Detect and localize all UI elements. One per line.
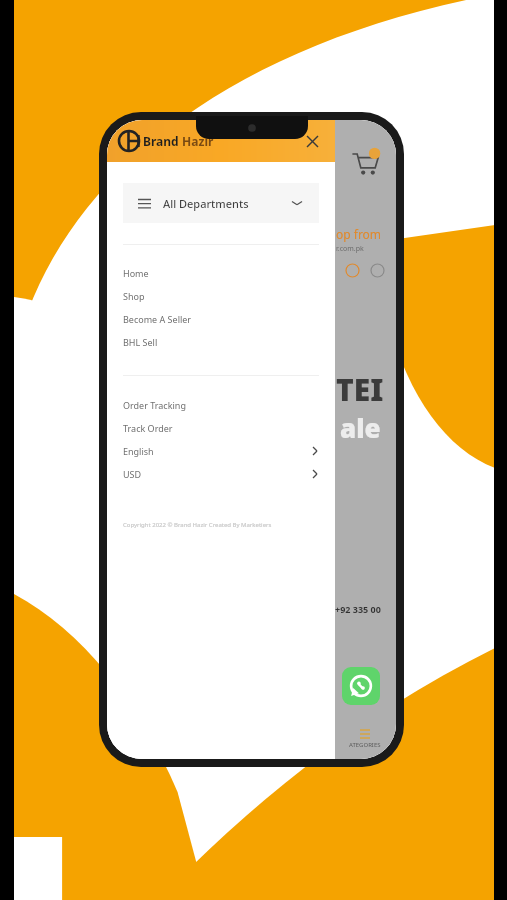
- button[interactable]: WhatsApp: [342, 667, 380, 705]
- button[interactable]: English: [107, 439, 335, 462]
- staticText: Hazir: [179, 133, 214, 149]
- button[interactable]: ATEGORIES: [334, 727, 396, 749]
- button[interactable]: Close: [301, 130, 323, 152]
- button[interactable]: Shop: [107, 284, 335, 307]
- staticText: ATEGORIES: [349, 741, 381, 749]
- button[interactable]: Become A Seller: [107, 307, 335, 330]
- button[interactable]: Brand: [119, 131, 214, 151]
- staticText: ale: [340, 410, 381, 445]
- staticText: r.com.pk: [336, 244, 364, 254]
- staticText: Become A Seller: [123, 313, 192, 325]
- button[interactable]: Home: [107, 261, 335, 284]
- staticText: Home: [123, 267, 149, 279]
- staticText: op from: [336, 226, 382, 242]
- button[interactable]: BHL Sell: [107, 330, 335, 353]
- button[interactable]: All Departments: [123, 183, 319, 223]
- staticText: Brand: [143, 133, 179, 149]
- staticText: Track Order: [123, 422, 173, 434]
- staticText: USD: [123, 468, 142, 480]
- staticText: All Departments: [163, 196, 249, 211]
- staticText: +92 335 00: [335, 603, 381, 615]
- button[interactable]: USD: [107, 462, 335, 485]
- staticText: Shop: [123, 290, 145, 302]
- staticText: Copyright 2022 © Brand Hazir Created By …: [123, 521, 272, 529]
- staticText: Order Tracking: [123, 399, 186, 411]
- button[interactable]: Order Tracking: [107, 393, 335, 416]
- button[interactable]: Track Order: [107, 416, 335, 439]
- staticText: BHL Sell: [123, 336, 158, 348]
- staticText: TEI: [336, 369, 384, 410]
- staticText: English: [123, 445, 154, 457]
